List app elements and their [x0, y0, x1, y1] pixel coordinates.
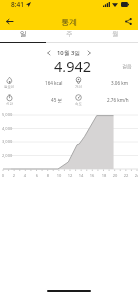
staticText: 22	[121, 173, 131, 178]
staticText: 45 분	[51, 97, 63, 103]
button[interactable]: 시간	[0, 94, 69, 106]
staticText: 6	[32, 173, 42, 178]
staticText: 2,000	[2, 153, 13, 158]
staticText: 칼로리	[4, 85, 15, 89]
staticText: 8:41	[11, 0, 24, 9]
staticText: 14	[76, 173, 86, 178]
button[interactable]: Back	[3, 15, 16, 28]
staticText: 8	[43, 173, 53, 178]
button[interactable]: 주	[46, 30, 92, 38]
staticText: 24	[132, 173, 138, 178]
staticText: 16	[87, 173, 97, 178]
staticText: 10	[54, 173, 64, 178]
staticText: 2	[9, 173, 19, 178]
staticText: 164 kcal	[45, 80, 63, 86]
staticText: 12	[65, 173, 75, 178]
button[interactable]: 월	[92, 30, 138, 38]
button[interactable]: Next day	[84, 48, 94, 58]
staticText: 속도	[75, 102, 82, 106]
staticText: 걸음	[122, 63, 132, 69]
button[interactable]: Share	[122, 15, 135, 28]
staticText: 통계	[61, 17, 77, 27]
staticText: 일	[20, 30, 27, 38]
staticText: 4	[20, 173, 30, 178]
staticText: 0	[0, 173, 8, 178]
staticText: 4,000	[2, 126, 13, 131]
button[interactable]: 일	[0, 30, 46, 38]
staticText: 20	[110, 173, 120, 178]
button[interactable]: 칼로리	[0, 77, 69, 89]
staticText: 10월 3일	[57, 49, 81, 57]
staticText: 시간	[6, 102, 13, 106]
button[interactable]: 속도	[69, 94, 138, 106]
staticText: 4,942	[54, 56, 92, 72]
button[interactable]: Previous day	[44, 48, 54, 58]
staticText: 월	[112, 30, 119, 38]
staticText: 주	[66, 30, 73, 38]
staticText: 3,000	[2, 139, 13, 144]
staticText: 3.06 km	[111, 80, 129, 86]
staticText: 거리	[75, 85, 82, 89]
staticText: 2.76 km/h	[107, 97, 129, 103]
button[interactable]: 거리	[69, 77, 138, 89]
staticText: 5,000	[2, 112, 13, 117]
staticText: 18	[99, 173, 109, 178]
